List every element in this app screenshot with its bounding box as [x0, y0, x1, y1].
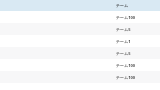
button[interactable]: チーム100: [0, 71, 160, 83]
staticText: チーム1: [116, 39, 131, 44]
button[interactable]: チーム1: [0, 35, 160, 47]
button[interactable]: チーム100: [0, 59, 160, 71]
staticText: チーム: [116, 3, 129, 8]
staticText: チーム100: [116, 63, 136, 68]
button[interactable]: チーム: [0, 0, 160, 11]
staticText: チーム5: [116, 51, 131, 56]
staticText: チーム5: [116, 27, 131, 32]
button[interactable]: チーム5: [0, 47, 160, 59]
staticText: チーム100: [116, 15, 136, 20]
staticText: チーム100: [116, 75, 136, 80]
button[interactable]: チーム5: [0, 23, 160, 35]
button[interactable]: チーム100: [0, 11, 160, 23]
